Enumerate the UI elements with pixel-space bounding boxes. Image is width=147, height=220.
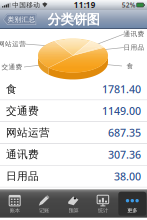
staticText: 日用品 bbox=[6, 170, 39, 183]
staticText: 网站运营 bbox=[6, 126, 50, 139]
staticText: 食 bbox=[126, 62, 133, 70]
staticText: 1149.00 bbox=[102, 104, 141, 118]
staticText: 通讯费 bbox=[123, 30, 144, 38]
staticText: 更多 bbox=[127, 207, 137, 214]
button[interactable]: 记账 bbox=[29, 191, 59, 217]
staticText: 通讯费 bbox=[6, 148, 39, 161]
staticText: 交通费 bbox=[6, 104, 39, 117]
staticText: 687.35 bbox=[108, 126, 141, 140]
staticText: 日用品 bbox=[123, 43, 144, 52]
staticText: 食 bbox=[6, 82, 17, 96]
staticText: 52% bbox=[122, 1, 136, 9]
staticText: 交通费 bbox=[1, 63, 22, 71]
button[interactable]: 更多 bbox=[118, 191, 147, 217]
button[interactable]: 网站运营 bbox=[0, 122, 147, 144]
staticText: 网站运营 bbox=[0, 40, 26, 48]
button[interactable]: 统计 bbox=[88, 191, 118, 217]
staticText: 1781.40 bbox=[102, 82, 141, 96]
button[interactable]: 日用品 bbox=[0, 166, 147, 187]
staticText: 类别汇总 bbox=[7, 15, 35, 24]
staticText: 38.00 bbox=[114, 169, 141, 183]
button[interactable]: 通讯费 bbox=[0, 144, 147, 166]
button[interactable]: 账本 bbox=[0, 191, 29, 217]
button[interactable]: 食 bbox=[0, 78, 147, 100]
staticText: 账本 bbox=[10, 207, 20, 214]
staticText: 预算 bbox=[68, 207, 78, 214]
button[interactable]: 类别汇总 bbox=[2, 13, 36, 26]
staticText: 记账 bbox=[39, 207, 49, 214]
staticText: 统计 bbox=[98, 207, 108, 214]
staticText: 分类饼图 bbox=[47, 11, 99, 28]
button[interactable]: 预算 bbox=[59, 191, 88, 217]
staticText: 307.36 bbox=[108, 147, 141, 162]
staticText: 11:19 bbox=[74, 0, 96, 10]
button[interactable]: 交通费 bbox=[0, 100, 147, 122]
staticText: 中国移动 bbox=[12, 1, 40, 9]
